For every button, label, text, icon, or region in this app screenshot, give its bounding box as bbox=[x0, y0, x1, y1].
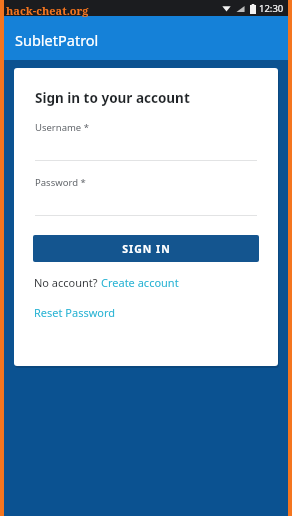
staticText: Create account bbox=[101, 275, 179, 290]
staticText: No account? bbox=[34, 275, 101, 290]
staticText: Reset Password bbox=[34, 305, 116, 320]
staticText: hack-cheat.org bbox=[6, 3, 89, 18]
button[interactable]: Username * bbox=[14, 121, 278, 161]
button[interactable]: Create account bbox=[101, 275, 179, 290]
staticText: 12:30 bbox=[259, 2, 284, 15]
button[interactable]: SIGN IN bbox=[33, 235, 259, 262]
button[interactable]: Reset Password bbox=[34, 305, 116, 320]
staticText: SIGN IN bbox=[122, 242, 171, 256]
staticText: Username * bbox=[35, 121, 89, 134]
staticText: Sign in to your account bbox=[35, 89, 190, 107]
button[interactable]: Password * bbox=[14, 176, 278, 216]
staticText: Password * bbox=[35, 176, 86, 189]
staticText: SubletPatrol bbox=[15, 30, 99, 50]
